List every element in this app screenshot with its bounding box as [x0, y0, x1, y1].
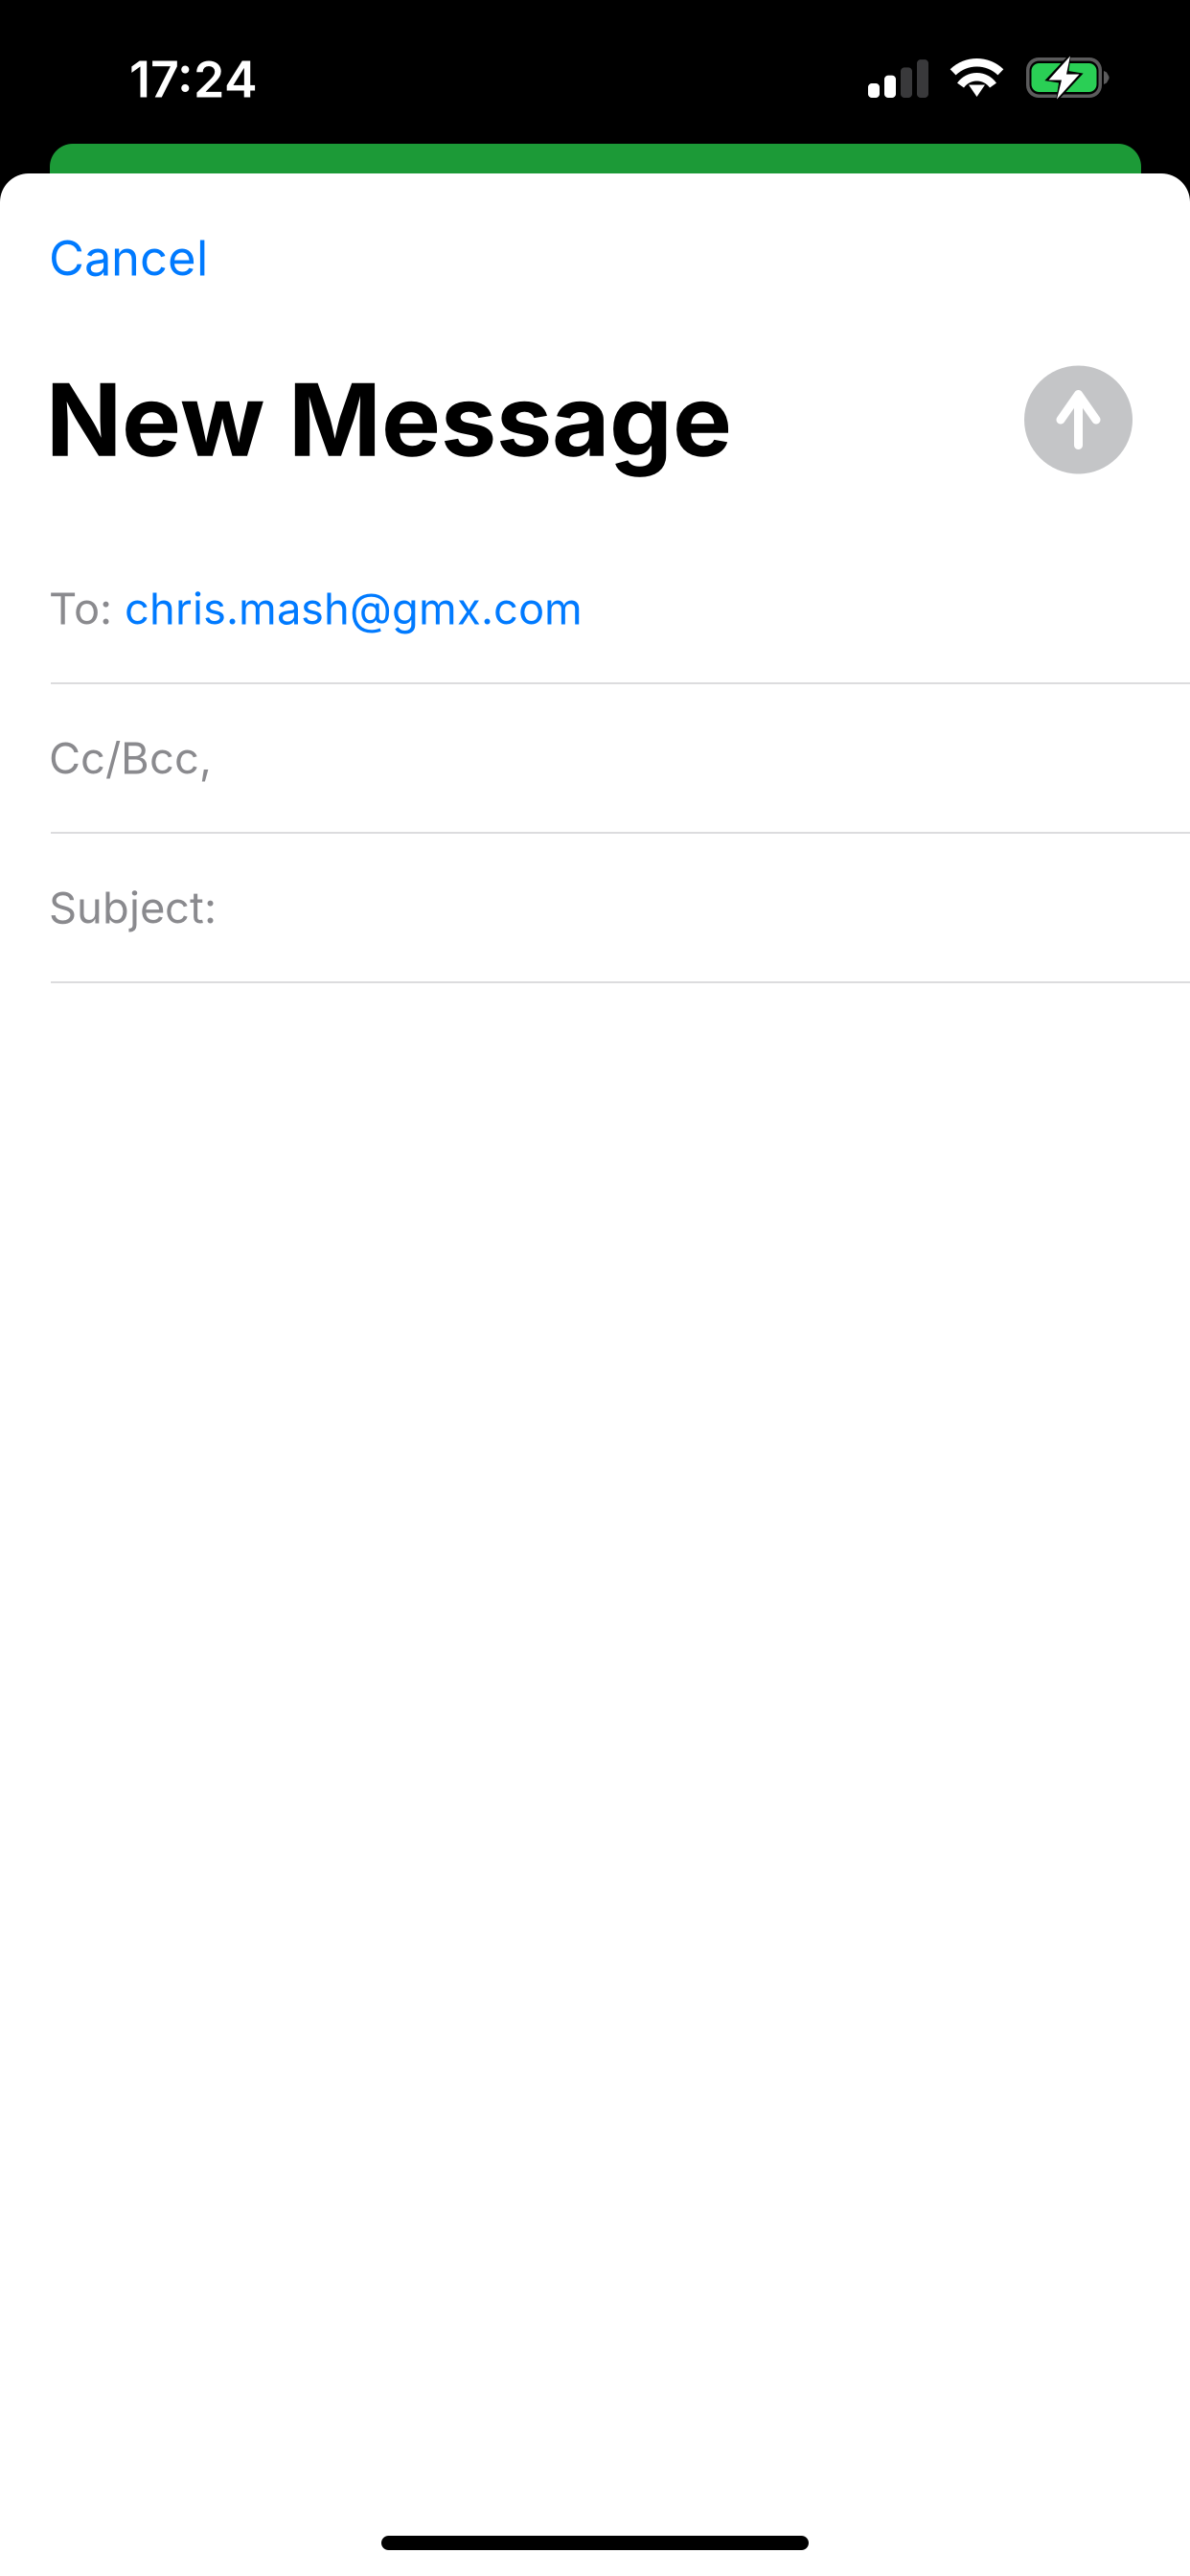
- button[interactable]: To:: [0, 535, 1190, 684]
- staticText: Cc/Bcc,: [49, 732, 212, 784]
- staticText: Subject:: [49, 882, 217, 933]
- button[interactable]: Cc/Bcc,: [0, 684, 1190, 834]
- staticText: Cancel: [49, 229, 208, 286]
- button[interactable]: Cancel: [0, 208, 246, 308]
- staticText: chris.mash@gmx.com: [125, 583, 583, 634]
- staticText: To:: [49, 583, 112, 634]
- staticText: 17:24: [129, 50, 258, 109]
- button[interactable]: Subject:: [0, 834, 1190, 983]
- button[interactable]: Send: [1024, 366, 1133, 474]
- staticText: New Message: [46, 361, 732, 479]
